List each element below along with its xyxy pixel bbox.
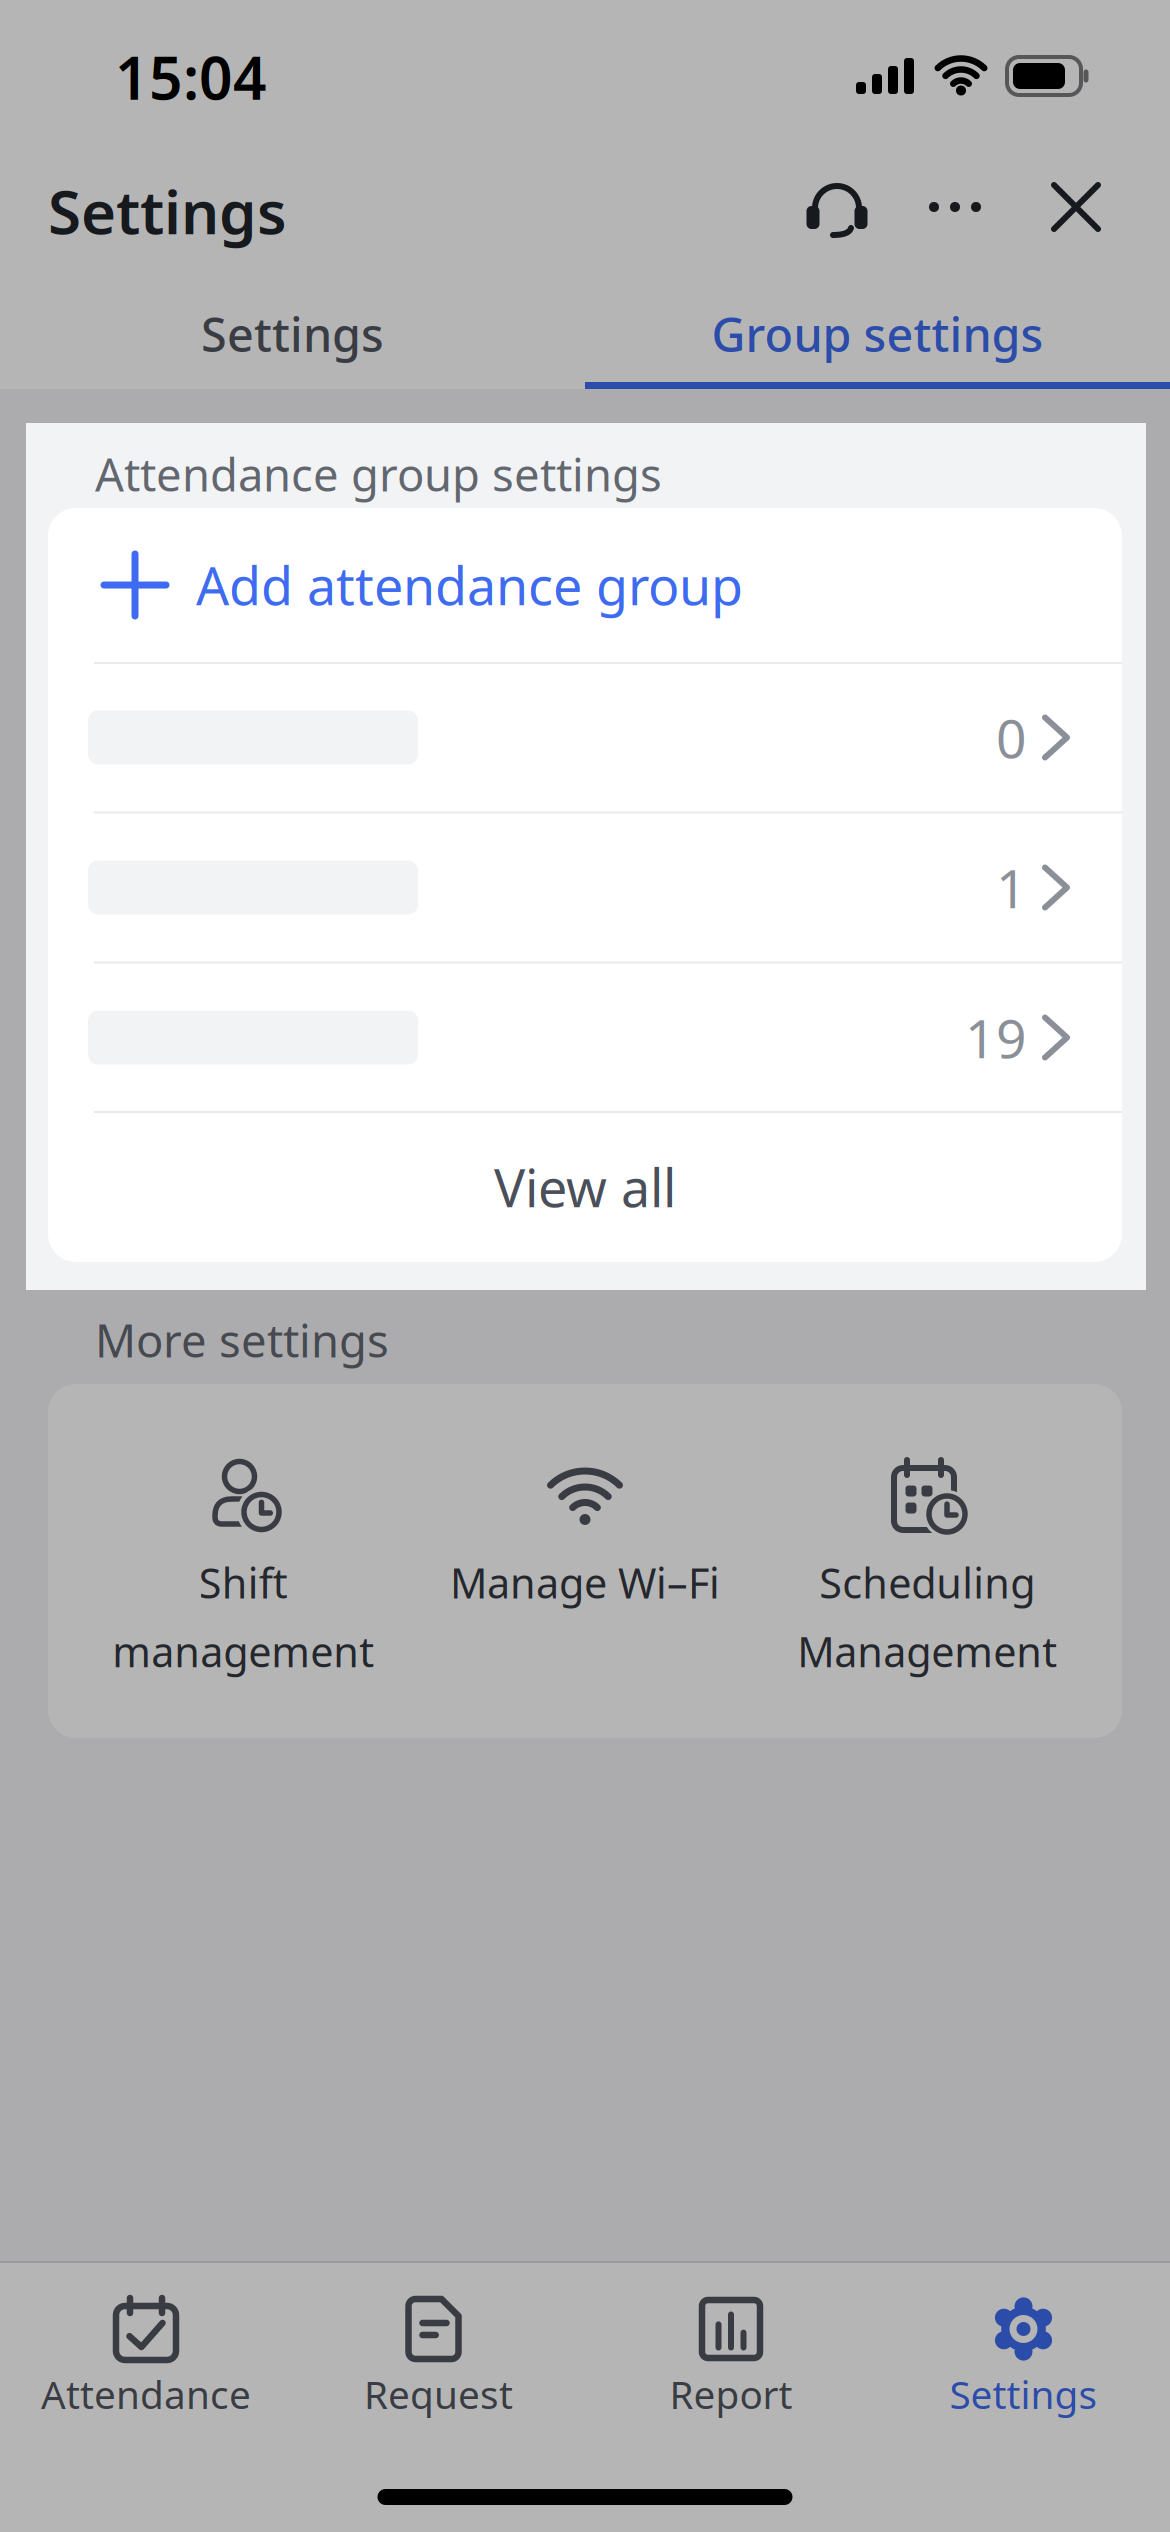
button[interactable]: Attendance — [0, 2269, 292, 2449]
staticText: Manage Wi–Fi — [450, 1555, 720, 1610]
staticText: Request — [364, 2368, 513, 2420]
staticText: Group settings — [711, 303, 1043, 365]
button[interactable]: Support — [809, 178, 865, 236]
button[interactable]: More — [925, 187, 985, 227]
staticText: 15:04 — [115, 38, 267, 116]
staticText: Attendance group settings — [95, 444, 662, 504]
button[interactable]: Scheduling Management — [753, 1455, 1101, 1745]
button[interactable]: Settings — [0, 289, 585, 379]
button[interactable]: Request — [292, 2269, 584, 2449]
staticText: Add attendance group — [196, 550, 743, 620]
button[interactable]: View all — [48, 1112, 1122, 1262]
button[interactable]: Group settings — [585, 289, 1170, 379]
staticText: Shift management — [112, 1555, 374, 1679]
staticText: Settings — [949, 2368, 1097, 2420]
staticText: Settings — [201, 303, 384, 365]
button[interactable]: Manage Wi–Fi — [411, 1455, 759, 1745]
staticText: Scheduling Management — [797, 1555, 1057, 1679]
staticText: View all — [494, 1152, 676, 1222]
button[interactable]: 1 — [48, 812, 1122, 962]
staticText: Settings — [48, 171, 287, 251]
button[interactable]: Settings — [877, 2269, 1169, 2449]
button[interactable]: 19 — [48, 962, 1122, 1112]
staticText: 1 — [996, 852, 1027, 923]
button[interactable]: 0 — [48, 662, 1122, 812]
button[interactable]: Close — [1054, 185, 1098, 229]
button[interactable]: Add attendance group — [48, 508, 1122, 662]
staticText: More settings — [95, 1310, 389, 1370]
staticText: Report — [669, 2368, 792, 2420]
staticText: 0 — [996, 702, 1027, 773]
button[interactable]: Shift management — [69, 1455, 417, 1745]
staticText: 19 — [965, 1002, 1027, 1073]
button[interactable]: Report — [585, 2269, 877, 2449]
staticText: Attendance — [41, 2368, 251, 2420]
